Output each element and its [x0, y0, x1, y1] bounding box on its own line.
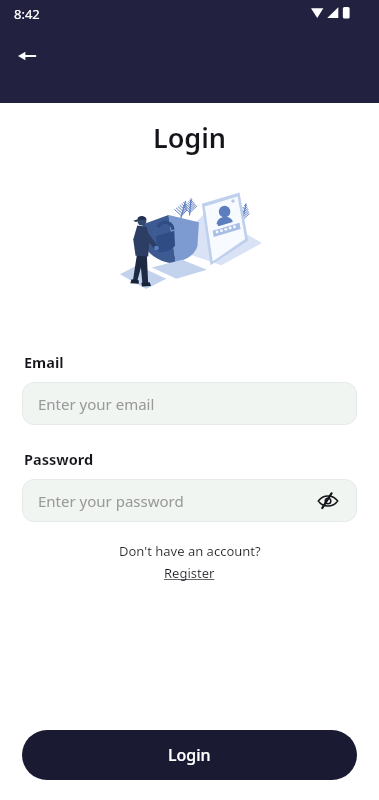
- staticText: Enter your password: [38, 491, 315, 511]
- staticText: 8:42: [14, 5, 40, 23]
- staticText: Password: [24, 449, 94, 469]
- button[interactable]: Enter your email: [22, 382, 357, 425]
- button[interactable]: Show password: [315, 488, 341, 514]
- staticText: Don't have an account?: [119, 542, 261, 560]
- staticText: Email: [24, 352, 64, 372]
- button[interactable]: Back: [10, 39, 44, 73]
- staticText: Enter your email: [38, 394, 341, 414]
- staticText: Register: [164, 564, 215, 582]
- button[interactable]: Register: [160, 563, 219, 583]
- button[interactable]: Login: [22, 730, 357, 780]
- staticText: Login: [168, 744, 211, 766]
- button[interactable]: Enter your password: [22, 479, 357, 522]
- staticText: Login: [0, 119, 379, 156]
